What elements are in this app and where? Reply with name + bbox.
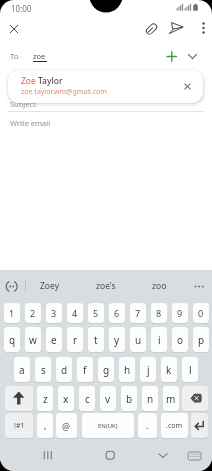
staticText: j <box>147 363 150 377</box>
button[interactable]: p <box>193 327 209 352</box>
staticText: e <box>51 333 57 347</box>
staticText: u <box>135 333 142 347</box>
button[interactable]: 7 <box>130 303 146 323</box>
button[interactable]: g <box>98 357 114 382</box>
staticText: y <box>114 333 120 347</box>
button[interactable]: EN(UK) <box>82 413 134 438</box>
button[interactable]: f <box>77 357 93 382</box>
staticText: w <box>29 333 37 347</box>
button[interactable] <box>164 48 180 64</box>
staticText: 9 <box>177 307 183 319</box>
staticText: 3 <box>51 307 57 319</box>
staticText: 1 <box>9 307 15 319</box>
button[interactable] <box>168 21 184 37</box>
staticText: 5 <box>93 307 99 319</box>
button[interactable] <box>153 448 173 466</box>
staticText: o <box>177 333 184 347</box>
staticText: i <box>158 333 161 347</box>
button[interactable]: k <box>161 357 177 382</box>
staticText: .com <box>166 421 183 431</box>
staticText: l <box>189 363 192 377</box>
button[interactable]: 6 <box>109 303 125 323</box>
button[interactable]: 9 <box>172 303 188 323</box>
button[interactable]: Zoe Taylor <box>8 70 203 103</box>
button[interactable]: Zoey <box>28 274 70 298</box>
button[interactable]: m <box>163 386 179 411</box>
button[interactable]: @ <box>56 413 77 438</box>
button[interactable]: .com <box>161 413 188 438</box>
staticText: zoe's <box>96 280 116 292</box>
staticText: Subject <box>10 99 36 109</box>
button[interactable]: v <box>100 386 116 411</box>
button[interactable]: z <box>37 386 53 411</box>
button[interactable]: l <box>182 357 198 382</box>
button[interactable]: 5 <box>88 303 104 323</box>
button[interactable]: u <box>130 327 146 352</box>
staticText: n <box>147 392 154 406</box>
staticText: @ <box>62 420 71 432</box>
staticText: a <box>19 363 25 377</box>
button[interactable]: i <box>151 327 167 352</box>
staticText: , <box>44 419 47 432</box>
button[interactable]: d <box>56 357 72 382</box>
button[interactable] <box>182 386 208 411</box>
button[interactable]: j <box>140 357 156 382</box>
staticText: 10:00 <box>11 3 32 14</box>
button[interactable]: zoe's <box>85 274 127 298</box>
button[interactable] <box>196 21 210 37</box>
button[interactable]: c <box>79 386 95 411</box>
staticText: z <box>43 392 48 406</box>
button[interactable]: 8 <box>151 303 167 323</box>
button[interactable]: . <box>138 413 157 438</box>
button[interactable]: r <box>67 327 83 352</box>
staticText: Zoey <box>40 280 59 292</box>
button[interactable]: q <box>4 327 20 352</box>
staticText: b <box>126 392 133 406</box>
staticText: !#1 <box>14 421 25 431</box>
staticText: 6 <box>114 307 120 319</box>
button[interactable]: w <box>25 327 41 352</box>
button[interactable]: !#1 <box>5 413 33 438</box>
staticText: f <box>83 363 87 377</box>
staticText: s <box>41 363 46 377</box>
button[interactable] <box>143 21 159 37</box>
button[interactable]: 4 <box>67 303 83 323</box>
button[interactable]: b <box>121 386 137 411</box>
button[interactable]: 2 <box>25 303 41 323</box>
button[interactable] <box>5 386 33 411</box>
staticText: EN(UK) <box>98 422 118 430</box>
staticText: x <box>63 392 69 406</box>
staticText: t <box>94 333 98 347</box>
staticText: g <box>103 363 110 377</box>
button[interactable] <box>38 448 58 466</box>
button[interactable]: , <box>37 413 53 438</box>
button[interactable] <box>6 21 22 37</box>
button[interactable] <box>191 413 208 438</box>
button[interactable]: e <box>46 327 62 352</box>
button[interactable]: a <box>14 357 30 382</box>
button[interactable]: s <box>35 357 51 382</box>
button[interactable]: x <box>58 386 74 411</box>
button[interactable] <box>186 449 204 463</box>
button[interactable]: h <box>119 357 135 382</box>
button[interactable]: 0 <box>193 303 209 323</box>
button[interactable]: t <box>88 327 104 352</box>
staticText: zoe <box>33 51 46 61</box>
button[interactable]: 1 <box>4 303 20 323</box>
staticText: Write email <box>10 118 51 128</box>
staticText: Zoe Taylor <box>21 75 63 87</box>
staticText: 0 <box>198 307 204 319</box>
staticText: m <box>166 392 176 406</box>
button[interactable]: y <box>109 327 125 352</box>
button[interactable] <box>100 448 120 466</box>
button[interactable] <box>185 48 201 64</box>
staticText: c <box>85 392 90 406</box>
button[interactable]: zoo <box>138 274 180 298</box>
staticText: k <box>166 363 172 377</box>
button[interactable]: 3 <box>46 303 62 323</box>
button[interactable] <box>180 79 195 94</box>
staticText: d <box>61 363 68 377</box>
button[interactable]: o <box>172 327 188 352</box>
button[interactable]: n <box>142 386 158 411</box>
staticText: v <box>105 392 111 406</box>
